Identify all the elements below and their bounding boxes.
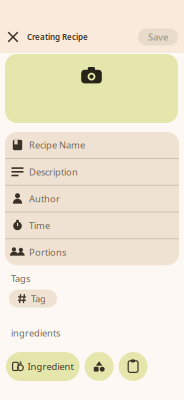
button[interactable]: Description: [5, 159, 179, 186]
staticText: Time: [29, 219, 50, 232]
button[interactable]: Ingredient: [6, 352, 80, 381]
staticText: Creating Recipe: [27, 32, 88, 42]
button[interactable]: Recipe Name: [5, 132, 179, 159]
staticText: ingredients: [11, 327, 60, 339]
button[interactable]: Portions: [5, 239, 179, 265]
staticText: Author: [29, 192, 60, 205]
button[interactable]: Close: [3, 27, 23, 47]
button[interactable]: Tag: [9, 290, 57, 308]
button[interactable]: Save: [138, 28, 178, 45]
staticText: Recipe Name: [29, 139, 85, 151]
staticText: Ingredient: [28, 360, 74, 373]
staticText: Description: [29, 166, 78, 178]
button[interactable]: Paste: [119, 352, 148, 381]
staticText: Save: [148, 31, 168, 43]
button[interactable]: Author: [5, 186, 179, 212]
button[interactable]: Shapes: [85, 352, 114, 381]
staticText: Tag: [31, 292, 46, 305]
staticText: Portions: [29, 246, 66, 258]
button[interactable]: Time: [5, 212, 179, 239]
staticText: Tags: [11, 272, 30, 285]
